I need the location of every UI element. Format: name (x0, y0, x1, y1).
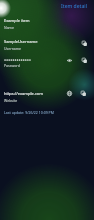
button[interactable]: https://example.com (0, 91, 94, 105)
button[interactable]: Toggle password visibility (67, 58, 72, 63)
staticText: SampleUsername (4, 39, 38, 44)
button[interactable]: Open website (67, 91, 72, 96)
button[interactable]: Copy username (82, 41, 87, 46)
staticText: Website (4, 98, 18, 103)
button[interactable]: Copy website (81, 91, 86, 96)
button[interactable]: Password (0, 57, 94, 71)
button[interactable]: SampleUsername (0, 39, 94, 53)
staticText: Last update: 9/26/22 10:09 PM (4, 110, 54, 115)
button[interactable]: Copy password (82, 58, 87, 63)
staticText: https://example.com (4, 91, 43, 96)
staticText: Name (4, 25, 14, 30)
staticText: Password (4, 63, 20, 68)
button[interactable]: Item detail (61, 3, 88, 10)
staticText: Username (4, 46, 22, 51)
staticText: Example item (4, 18, 30, 23)
button[interactable]: Example item (0, 18, 94, 32)
